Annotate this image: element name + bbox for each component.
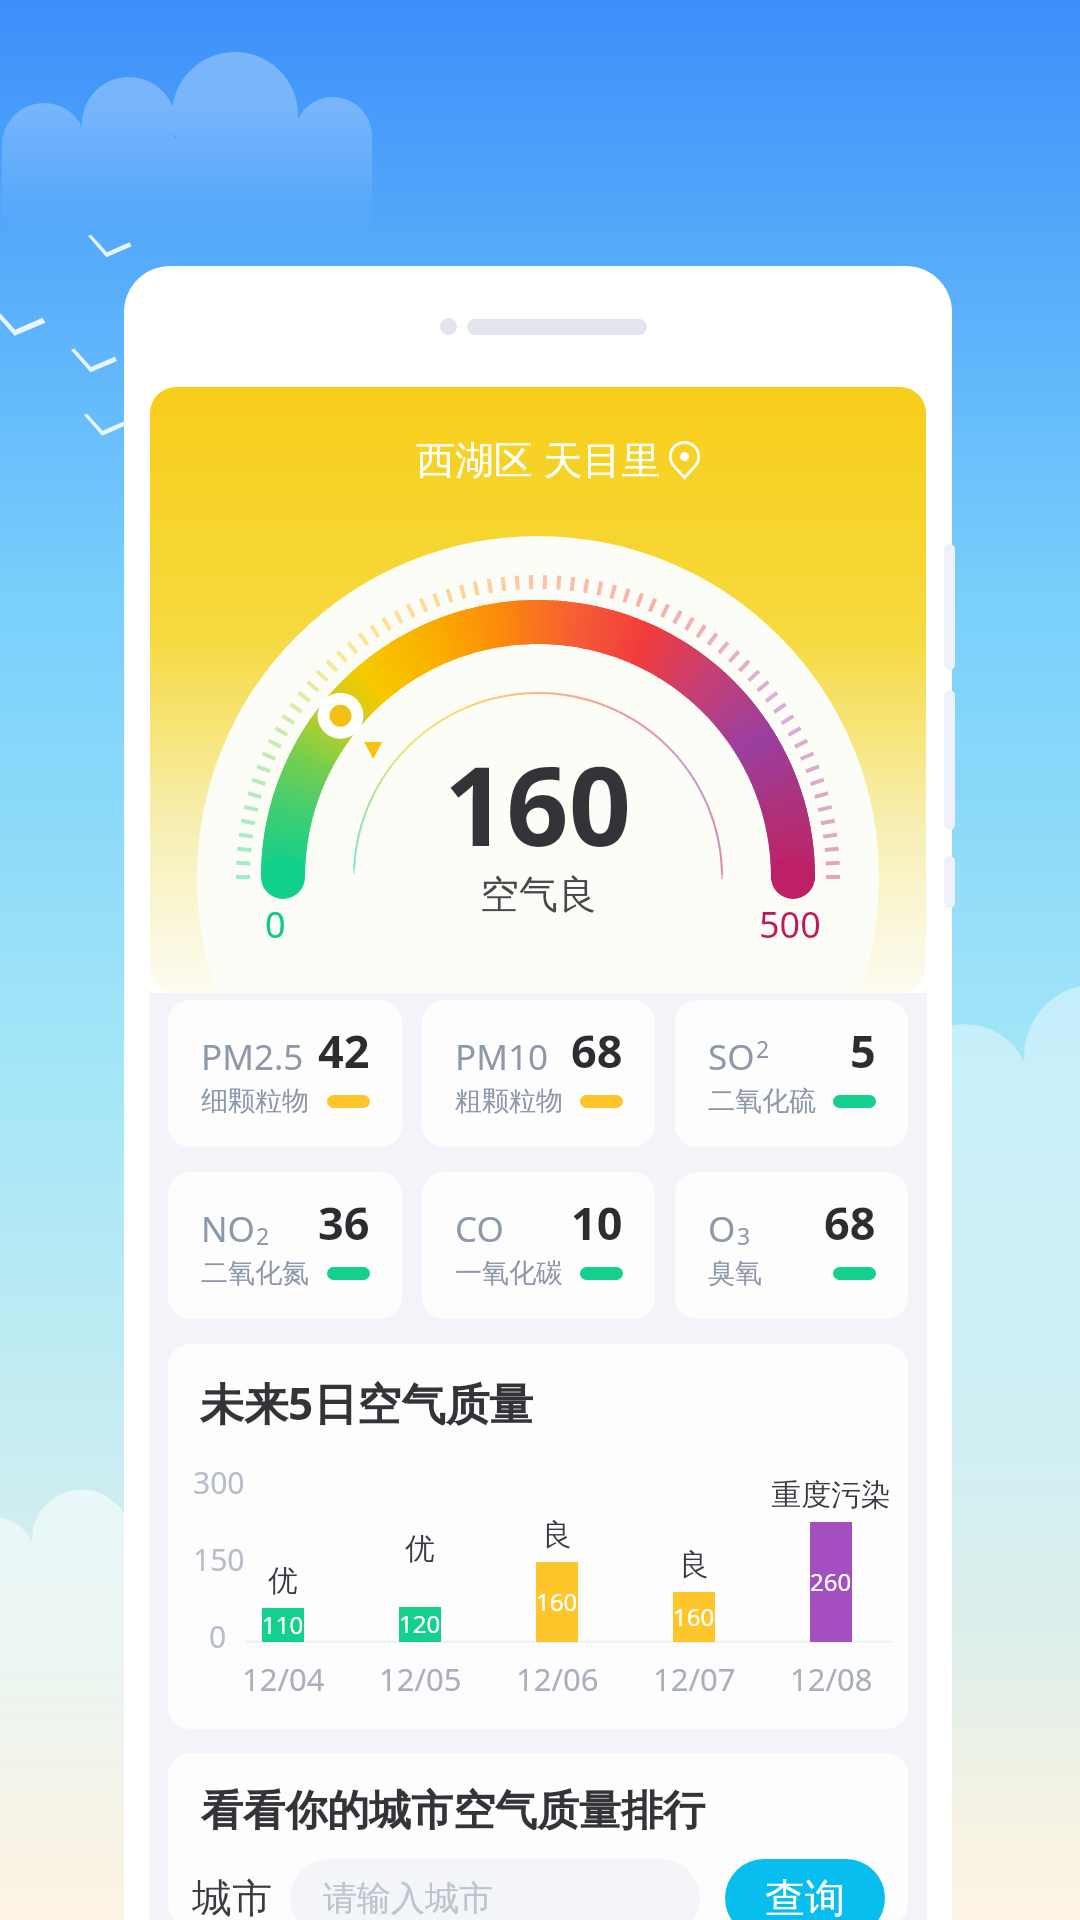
staticText: 68 xyxy=(824,1192,876,1253)
staticText: 12/06 xyxy=(516,1658,599,1700)
staticText: 260 xyxy=(810,1565,852,1598)
staticText: 优 xyxy=(268,1562,298,1600)
staticText: 空气良 xyxy=(480,870,597,919)
staticText: SO xyxy=(708,1033,755,1081)
staticText: NO xyxy=(201,1205,255,1253)
staticText: 一氧化碳 xyxy=(455,1256,563,1290)
staticText: 150 xyxy=(193,1539,245,1580)
staticText: 120 xyxy=(399,1607,441,1640)
staticText: 160 xyxy=(444,729,632,877)
staticText: 二氧化氮 xyxy=(201,1256,309,1290)
staticText: 36 xyxy=(318,1192,370,1253)
staticText: 2 xyxy=(256,1220,270,1251)
staticText: 查询 xyxy=(765,1873,845,1920)
staticText: 0 xyxy=(209,1616,227,1657)
staticText: PM10 xyxy=(455,1033,548,1081)
button[interactable]: NO xyxy=(168,1172,402,1319)
staticText: 12/04 xyxy=(242,1658,325,1700)
staticText: 42 xyxy=(318,1020,370,1081)
staticText: 良 xyxy=(679,1546,709,1584)
button[interactable]: Location xyxy=(660,433,709,487)
staticText: 10 xyxy=(571,1192,623,1253)
staticText: 110 xyxy=(262,1608,304,1641)
staticText: 良 xyxy=(542,1516,572,1554)
button[interactable]: PM10 xyxy=(422,1000,655,1147)
staticText: 0 xyxy=(265,900,286,949)
staticText: 请输入城市 xyxy=(323,1877,493,1920)
staticText: 粗颗粒物 xyxy=(455,1084,563,1118)
staticText: 5 xyxy=(850,1020,876,1081)
staticText: 优 xyxy=(405,1530,435,1568)
staticText: PM2.5 xyxy=(201,1033,304,1081)
staticText: 500 xyxy=(759,900,821,949)
button[interactable]: O xyxy=(675,1172,908,1319)
staticText: 68 xyxy=(571,1020,623,1081)
staticText: 西湖区 天目里 xyxy=(416,432,661,485)
staticText: 12/05 xyxy=(379,1658,462,1700)
button[interactable]: 请输入城市 xyxy=(290,1859,700,1920)
staticText: 160 xyxy=(673,1600,715,1633)
button[interactable]: CO xyxy=(422,1172,655,1319)
staticText: 臭氧 xyxy=(708,1256,762,1290)
staticText: 重度污染 xyxy=(771,1476,891,1514)
button[interactable]: 查询 xyxy=(725,1859,885,1920)
staticText: 160 xyxy=(536,1585,578,1618)
button[interactable]: SO xyxy=(675,1000,908,1147)
staticText: 2 xyxy=(756,1033,770,1064)
staticText: 12/08 xyxy=(790,1658,873,1700)
button[interactable]: PM2.5 xyxy=(168,1000,402,1147)
staticText: 未来5日空气质量 xyxy=(200,1373,534,1433)
staticText: 二氧化硫 xyxy=(708,1084,816,1118)
staticText: 城市 xyxy=(192,1873,272,1920)
staticText: 细颗粒物 xyxy=(201,1084,309,1118)
staticText: 300 xyxy=(193,1462,245,1503)
staticText: CO xyxy=(455,1205,504,1253)
staticText: 3 xyxy=(737,1220,751,1251)
staticText: O xyxy=(708,1205,736,1253)
staticText: 看看你的城市空气质量排行 xyxy=(201,1785,705,1838)
staticText: 12/07 xyxy=(653,1658,736,1700)
